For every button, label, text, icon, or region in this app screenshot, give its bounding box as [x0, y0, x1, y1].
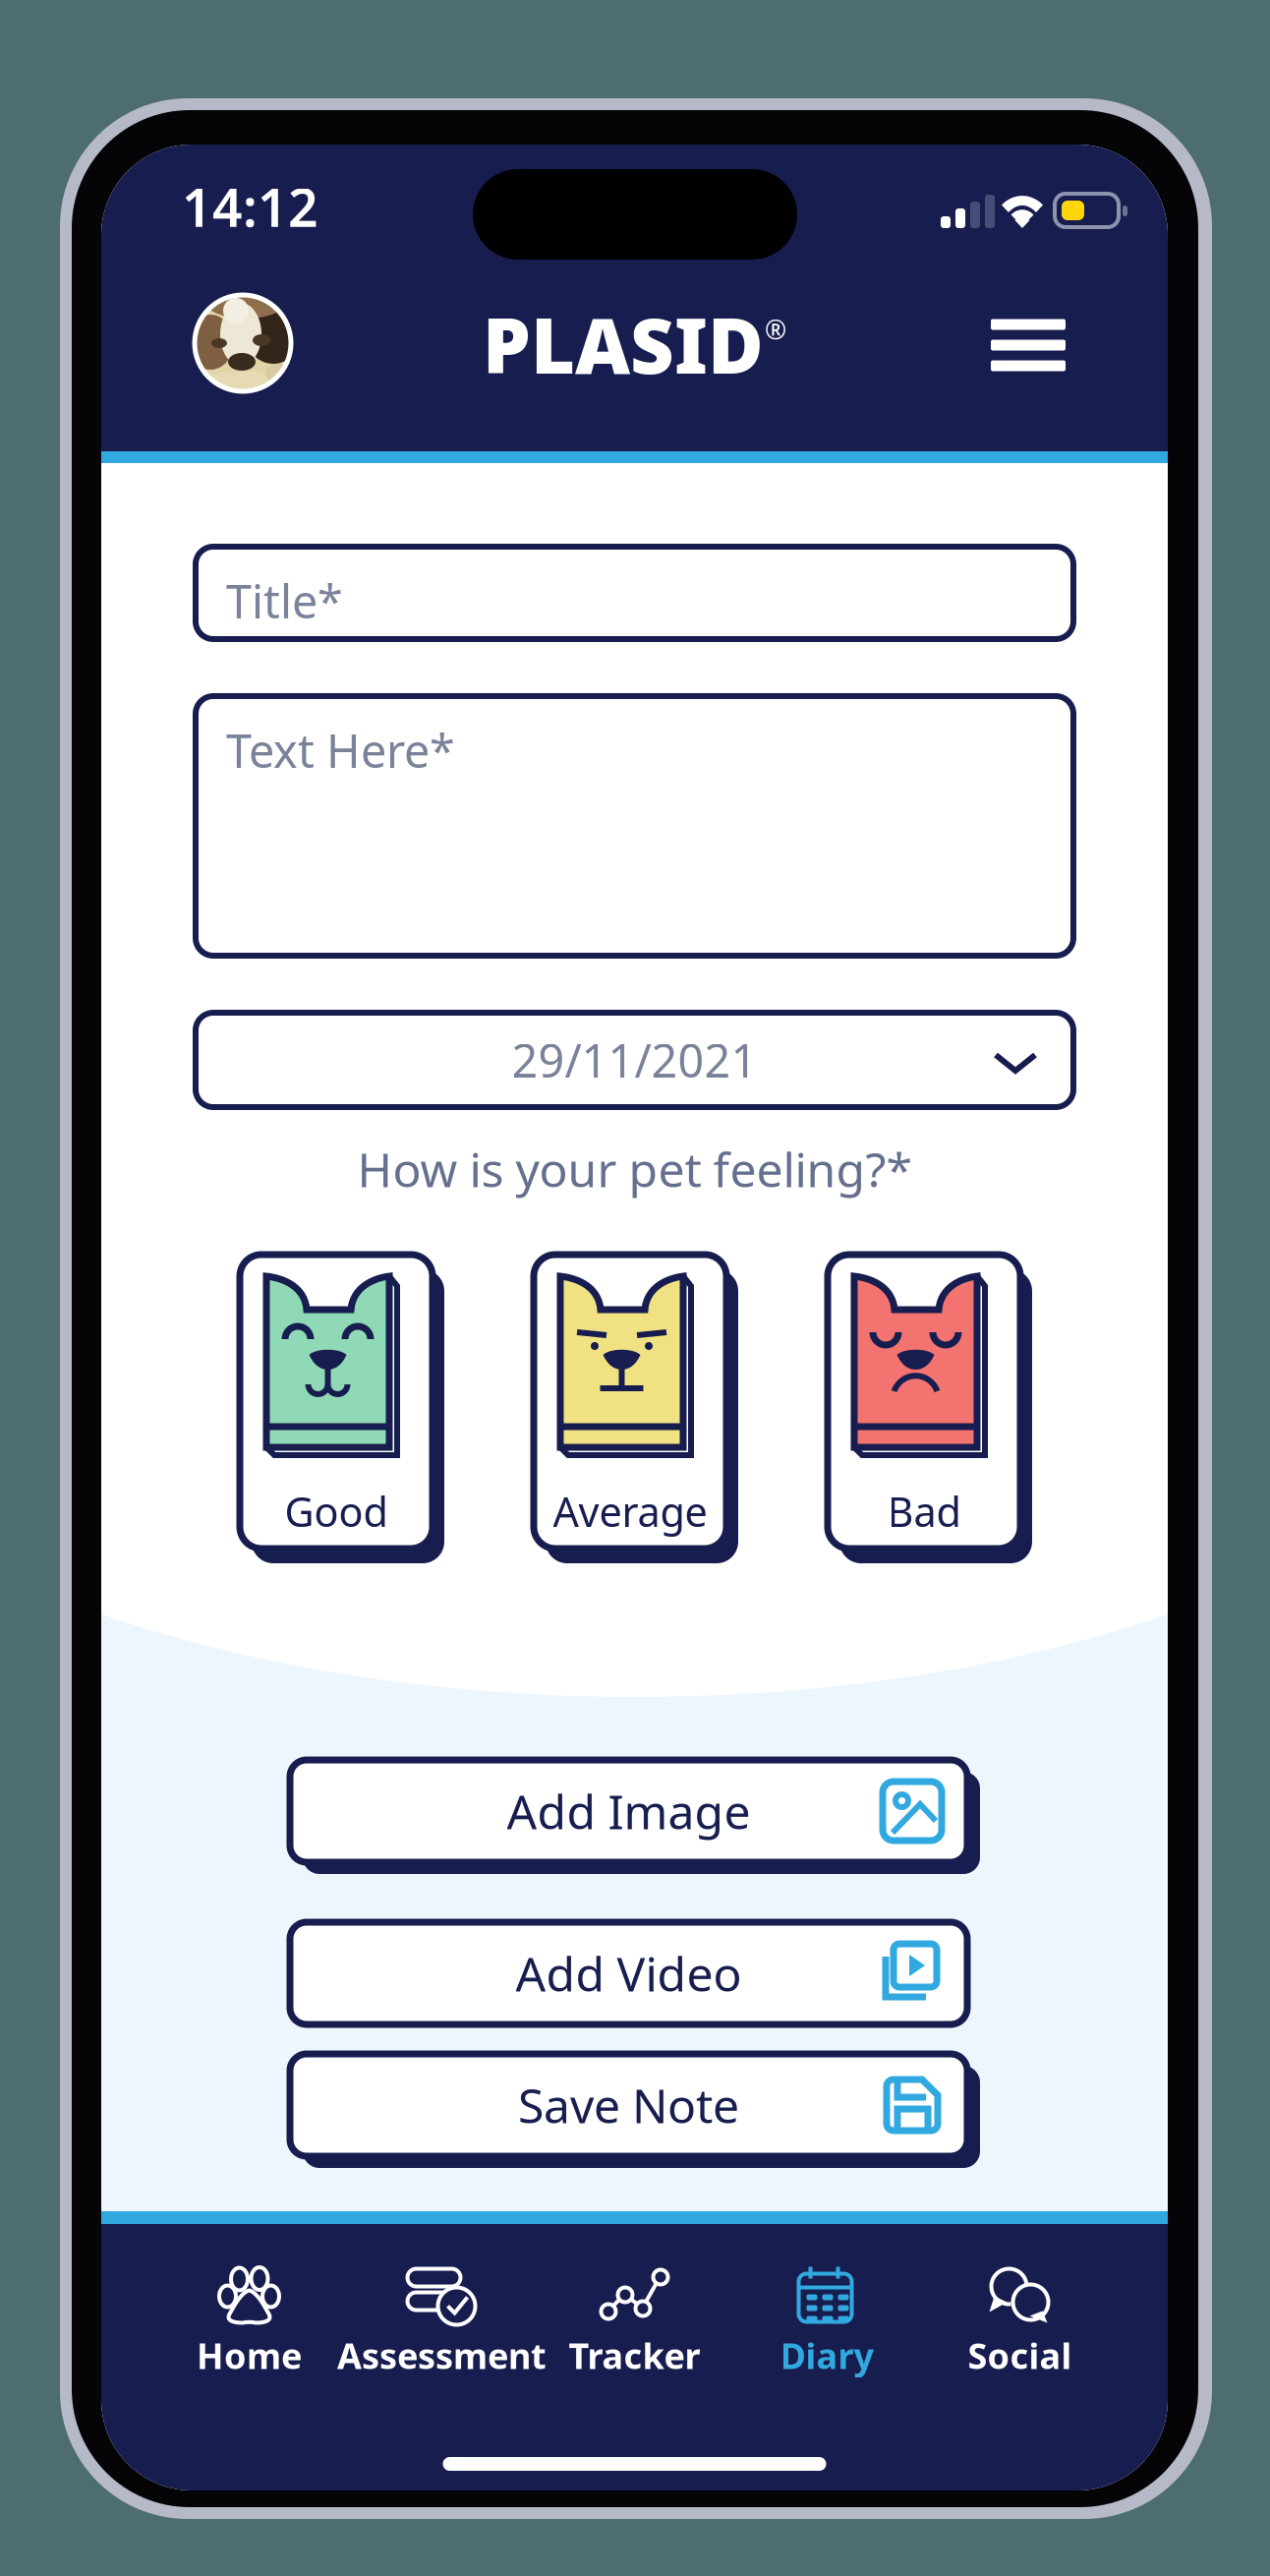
staticText: Text Here* — [226, 720, 455, 781]
button[interactable]: Assessment — [346, 2231, 538, 2384]
staticText: 29/11/2021 — [512, 1029, 757, 1090]
staticText: Home — [197, 2332, 302, 2379]
button[interactable]: Average — [534, 1255, 738, 1563]
staticText: Diary — [780, 2332, 874, 2379]
staticText: 14:12 — [182, 172, 318, 241]
button[interactable]: Menu — [982, 318, 1074, 373]
staticText: Save Note — [518, 2074, 739, 2136]
button[interactable]: Add Image — [290, 1760, 980, 1874]
button[interactable]: Add Video — [290, 1922, 980, 2036]
staticText: Bad — [887, 1484, 961, 1538]
button[interactable]: 29/11/2021 — [196, 1013, 1073, 1107]
button[interactable]: Tracker — [538, 2231, 731, 2384]
staticText: PLASID — [483, 294, 764, 395]
button[interactable]: Good — [240, 1255, 444, 1563]
staticText: Assessment — [337, 2332, 547, 2379]
button[interactable]: Home — [153, 2231, 346, 2384]
staticText: Good — [285, 1484, 388, 1538]
button[interactable]: Social — [924, 2231, 1116, 2384]
staticText: Add Video — [516, 1942, 742, 2005]
staticText: Tracker — [569, 2332, 700, 2379]
staticText: Average — [553, 1484, 707, 1538]
staticText: How is your pet feeling?* — [357, 1138, 912, 1200]
button[interactable]: Bad — [828, 1255, 1032, 1563]
staticText: Title* — [226, 570, 343, 631]
staticText: Add Image — [507, 1780, 750, 1842]
staticText: Social — [968, 2332, 1072, 2379]
button[interactable]: Diary — [731, 2231, 924, 2384]
staticText: ® — [765, 312, 786, 346]
button[interactable]: Profile — [195, 295, 291, 391]
button[interactable]: Save Note — [290, 2054, 980, 2168]
